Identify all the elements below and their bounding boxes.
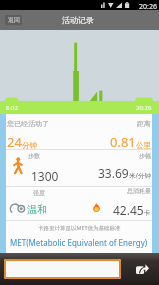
- staticText: 分钟: [22, 141, 37, 150]
- staticText: 24: [7, 133, 22, 151]
- staticText: 8:02: [6, 104, 18, 112]
- staticText: 33.69: [98, 165, 129, 181]
- staticText: 公里: [136, 141, 151, 150]
- staticText: 1300: [31, 168, 59, 184]
- staticText: 20:26: [139, 2, 157, 12]
- staticText: 20:26: [136, 104, 152, 112]
- staticText: 您已经活动了: [7, 119, 49, 128]
- staticText: 步数: [28, 152, 40, 160]
- staticText: 米/分钟: [129, 171, 151, 180]
- button[interactable]: [4, 259, 121, 279]
- staticText: 卡路里计算是以MET值为基础标准: [38, 224, 121, 232]
- staticText: 步幅: [139, 152, 151, 160]
- staticText: 距离: [137, 119, 151, 128]
- button[interactable]: MET(Metabolic Equivalent of Energy): [10, 237, 148, 248]
- button[interactable]: Share: [126, 253, 158, 285]
- staticText: 返回: [8, 16, 20, 24]
- staticText: 活动记录: [62, 15, 94, 25]
- staticText: 42.45: [113, 202, 144, 218]
- staticText: 0.81: [110, 133, 136, 151]
- staticText: 总消耗量: [127, 187, 151, 195]
- button[interactable]: 返回: [5, 15, 22, 25]
- staticText: 卡: [144, 209, 151, 217]
- staticText: 强度: [33, 189, 45, 197]
- staticText: 温和: [27, 203, 47, 216]
